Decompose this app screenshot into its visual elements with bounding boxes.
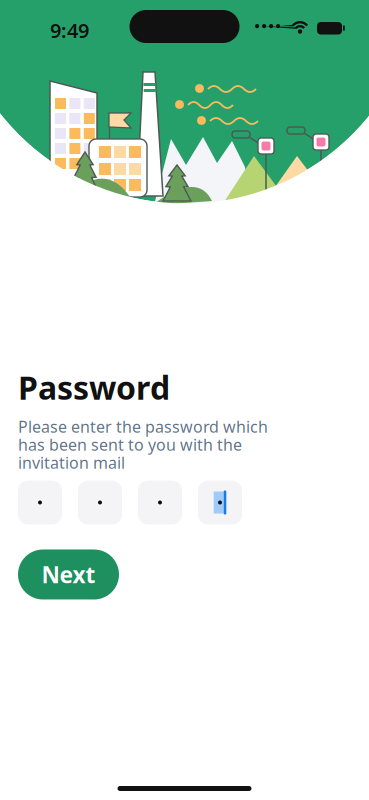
button[interactable]: Password digit: [18, 480, 62, 524]
button[interactable]: Password digit: [78, 480, 122, 524]
staticText: Next: [41, 559, 95, 589]
staticText: has been sent to you with the: [18, 434, 242, 455]
button[interactable]: Password digit: [138, 480, 182, 524]
staticText: 9:49: [50, 17, 89, 44]
staticText: invitation mail: [18, 452, 125, 473]
staticText: Password: [18, 366, 170, 408]
button[interactable]: Next: [18, 549, 119, 599]
staticText: Please enter the password which: [18, 416, 268, 437]
button[interactable]: Password digit 4: [198, 480, 242, 524]
